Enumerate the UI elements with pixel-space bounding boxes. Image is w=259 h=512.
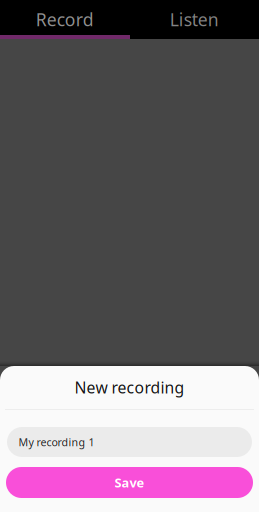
staticText: Save xyxy=(114,474,144,491)
staticText: My recording 1 xyxy=(18,435,94,449)
button[interactable]: Record xyxy=(0,0,129,39)
staticText: Listen xyxy=(170,8,219,31)
button[interactable]: My recording 1 xyxy=(7,427,252,457)
button[interactable]: Save xyxy=(6,467,253,498)
button[interactable]: Listen xyxy=(129,0,259,39)
staticText: New recording xyxy=(74,377,184,398)
staticText: Record xyxy=(36,8,94,31)
